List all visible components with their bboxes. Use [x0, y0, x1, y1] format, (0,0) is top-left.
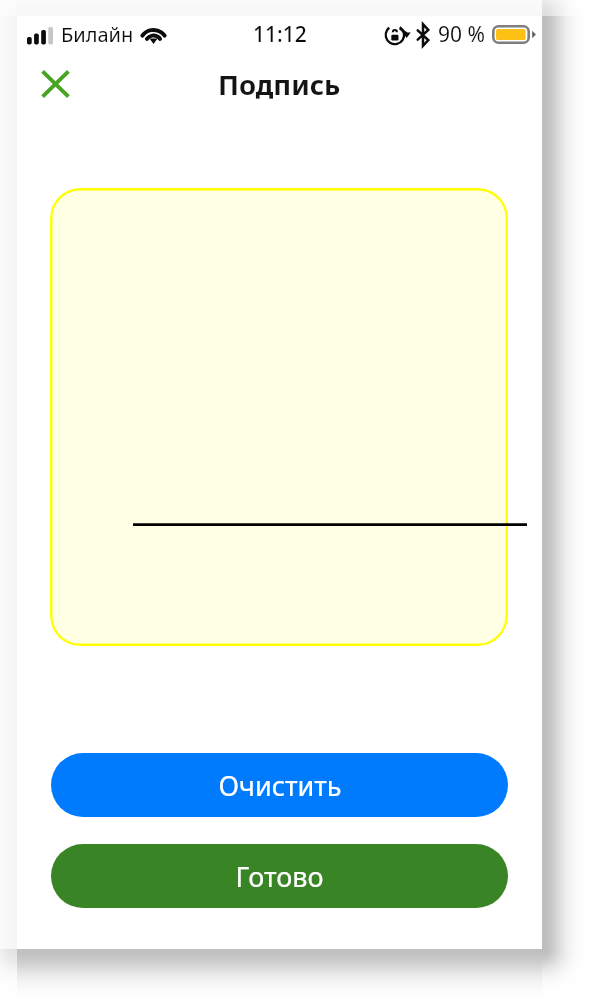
staticText: Подпись: [218, 66, 341, 103]
button[interactable]: Close: [29, 58, 81, 110]
staticText: Готово: [235, 858, 324, 895]
staticText: 11:12: [253, 20, 307, 49]
staticText: 90 %: [438, 20, 485, 49]
staticText: Очистить: [218, 767, 342, 804]
button[interactable]: Signature area: [50, 188, 508, 646]
staticText: Билайн: [61, 21, 134, 48]
button[interactable]: Очистить: [51, 753, 508, 817]
button[interactable]: Готово: [51, 844, 508, 908]
